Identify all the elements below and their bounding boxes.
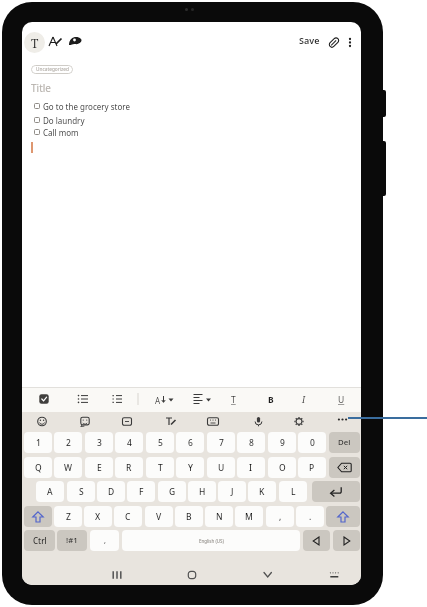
staticText: 2 xyxy=(66,437,71,449)
button[interactable] xyxy=(326,567,342,583)
staticText: , xyxy=(279,511,282,523)
staticText: U xyxy=(218,462,225,474)
button[interactable]: K xyxy=(248,481,276,502)
button[interactable]: A xyxy=(36,481,64,502)
button[interactable]: S xyxy=(67,481,95,502)
button[interactable]: English (US) xyxy=(122,530,300,551)
staticText: , xyxy=(104,536,106,546)
button[interactable]: O xyxy=(268,457,296,478)
button[interactable]: Ctrl xyxy=(24,530,55,551)
staticText: Go to the grocery store xyxy=(43,101,130,112)
button[interactable]: T xyxy=(146,457,174,478)
staticText: 7 xyxy=(219,437,224,449)
button[interactable]: T xyxy=(231,394,236,406)
button[interactable] xyxy=(163,413,177,427)
staticText: Del xyxy=(338,437,351,448)
button[interactable] xyxy=(24,506,52,527)
button[interactable] xyxy=(344,34,356,50)
staticText: B xyxy=(186,511,192,523)
staticText: A xyxy=(47,486,53,498)
button[interactable] xyxy=(312,481,360,502)
button[interactable]: !#1 xyxy=(57,530,87,551)
staticText: 3 xyxy=(97,437,102,449)
button[interactable]: A xyxy=(155,395,161,406)
button[interactable]: , xyxy=(266,506,294,527)
button[interactable]: 9 xyxy=(268,432,296,453)
button[interactable]: B xyxy=(268,394,274,406)
button[interactable] xyxy=(47,33,63,49)
button[interactable] xyxy=(326,34,342,50)
button[interactable] xyxy=(206,413,220,427)
button[interactable]: , xyxy=(90,530,119,551)
button[interactable]: . xyxy=(296,506,324,527)
button[interactable] xyxy=(109,567,125,583)
button[interactable] xyxy=(292,413,306,427)
button[interactable]: I xyxy=(237,457,265,478)
button[interactable]: 2 xyxy=(54,432,82,453)
button[interactable]: 6 xyxy=(176,432,204,453)
button[interactable]: E xyxy=(85,457,113,478)
staticText: English (US) xyxy=(199,538,224,544)
button[interactable]: 3 xyxy=(85,432,113,453)
staticText: 8 xyxy=(249,437,254,449)
button[interactable] xyxy=(336,413,350,427)
staticText: O xyxy=(279,462,286,474)
button[interactable]: Del xyxy=(329,432,360,453)
button[interactable]: G xyxy=(158,481,186,502)
button[interactable]: Y xyxy=(176,457,204,478)
button[interactable]: L xyxy=(279,481,307,502)
button[interactable] xyxy=(78,413,92,427)
button[interactable]: F xyxy=(127,481,155,502)
button[interactable] xyxy=(326,506,360,527)
button[interactable] xyxy=(34,129,40,135)
button[interactable]: T xyxy=(24,32,45,53)
button[interactable] xyxy=(67,33,83,49)
button[interactable] xyxy=(252,413,266,427)
button[interactable]: U xyxy=(338,394,345,406)
button[interactable]: U xyxy=(207,457,235,478)
button[interactable] xyxy=(303,530,330,551)
staticText: I xyxy=(249,462,253,474)
button[interactable]: 4 xyxy=(115,432,143,453)
button[interactable] xyxy=(329,457,360,478)
button[interactable]: X xyxy=(84,506,112,527)
button[interactable] xyxy=(260,567,276,583)
staticText: Y xyxy=(188,462,193,474)
staticText: H xyxy=(199,486,206,498)
button[interactable]: Save xyxy=(299,34,320,46)
button[interactable]: R xyxy=(115,457,143,478)
button[interactable]: 1 xyxy=(24,432,52,453)
button[interactable]: P xyxy=(298,457,326,478)
staticText: K xyxy=(259,486,265,498)
button[interactable]: Uncategorized xyxy=(31,65,73,74)
button[interactable]: H xyxy=(188,481,216,502)
staticText: 9 xyxy=(280,437,285,449)
staticText: T xyxy=(31,35,39,51)
button[interactable]: J xyxy=(218,481,246,502)
button[interactable]: Z xyxy=(54,506,82,527)
button[interactable]: W xyxy=(54,457,82,478)
button[interactable]: D xyxy=(97,481,125,502)
button[interactable] xyxy=(120,413,134,427)
button[interactable] xyxy=(34,117,40,123)
button[interactable]: I xyxy=(302,394,306,406)
button[interactable] xyxy=(35,413,49,427)
button[interactable] xyxy=(34,103,40,109)
button[interactable]: B xyxy=(175,506,203,527)
staticText: Title xyxy=(31,81,51,95)
button[interactable]: 7 xyxy=(207,432,235,453)
staticText: E xyxy=(97,462,102,474)
staticText: W xyxy=(64,462,72,474)
button[interactable]: V xyxy=(145,506,173,527)
button[interactable]: N xyxy=(205,506,233,527)
button[interactable]: 0 xyxy=(298,432,326,453)
button[interactable]: 8 xyxy=(237,432,265,453)
button[interactable]: C xyxy=(114,506,142,527)
staticText: J xyxy=(231,486,234,498)
button[interactable]: 5 xyxy=(146,432,174,453)
staticText: G xyxy=(169,486,176,498)
button[interactable]: Q xyxy=(24,457,52,478)
button[interactable]: M xyxy=(235,506,263,527)
button[interactable] xyxy=(184,567,200,583)
button[interactable] xyxy=(333,530,360,551)
